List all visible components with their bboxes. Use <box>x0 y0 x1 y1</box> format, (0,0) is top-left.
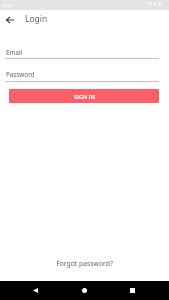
button[interactable]: Forgot password? <box>0 258 169 269</box>
button[interactable]: Home <box>76 281 92 300</box>
button[interactable]: Email <box>5 45 159 59</box>
staticText: Email <box>6 48 23 57</box>
button[interactable]: Back <box>27 281 43 300</box>
staticText: SIGN IN <box>74 93 95 100</box>
button[interactable]: Recent apps <box>124 281 140 300</box>
button[interactable]: Back <box>0 10 20 30</box>
button[interactable]: Password <box>5 68 159 82</box>
button[interactable]: SIGN IN <box>9 89 159 103</box>
staticText: Forgot password? <box>56 259 113 268</box>
staticText: Login <box>25 13 48 25</box>
staticText: Password <box>6 70 35 79</box>
staticText: 5:17 <box>3 2 12 8</box>
